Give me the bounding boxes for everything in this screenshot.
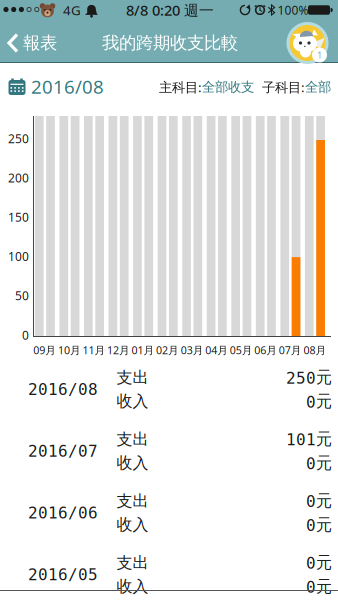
staticText: 50 [15,288,29,304]
staticText: 100 [8,248,29,264]
button[interactable]: 全部 [305,79,331,95]
staticText: 07月 [279,343,302,357]
staticText: 2016/06 [28,504,98,522]
staticText: 子科目: [254,78,305,96]
staticText: 收入 [116,453,148,473]
staticText: 收入 [116,515,148,535]
staticText: 報表 [23,32,57,54]
staticText: 2016/08 [28,380,98,399]
staticText: 100% [277,2,308,18]
staticText: 01月 [131,343,154,357]
staticText: 12月 [107,343,130,357]
staticText: 0元 [306,577,332,596]
staticText: 02月 [156,343,179,357]
staticText: 支出 [116,553,148,572]
staticText: 全部收支 [202,79,254,95]
button[interactable]: 全部收支 [202,79,254,95]
staticText: 09月 [33,343,56,357]
staticText: 0元 [306,453,332,473]
staticText: 支出 [116,429,148,449]
button[interactable]: 選擇月份 [8,71,133,101]
staticText: 收入 [116,577,148,596]
staticText: 03月 [181,343,204,357]
staticText: 主科目: [159,78,202,96]
staticText: 101元 [286,429,332,449]
staticText: 2016/08 [31,74,104,99]
staticText: 05月 [230,343,253,357]
staticText: 08月 [303,343,326,357]
staticText: 0元 [306,491,332,511]
staticText: 8/8 0:20 週一 [126,0,214,20]
staticText: 06月 [254,343,277,357]
staticText: 200 [8,170,29,186]
staticText: 0元 [306,515,332,535]
staticText: 4G [63,1,81,19]
staticText: 10月 [58,343,81,357]
staticText: 全部 [305,79,331,95]
staticText: 2016/07 [28,442,98,460]
staticText: 1 [317,49,322,61]
staticText: 我的跨期收支比較 [102,32,238,54]
staticText: 250 [8,130,29,146]
staticText: 支出 [116,368,148,387]
staticText: 250元 [286,368,332,387]
staticText: 04月 [205,343,228,357]
staticText: 2016/05 [28,565,98,584]
staticText: 0 [22,327,29,343]
staticText: 支出 [116,491,148,511]
staticText: 150 [8,209,29,225]
staticText: 11月 [82,343,105,357]
button[interactable]: 返回報表 [7,28,69,58]
staticText: 收入 [116,392,148,411]
staticText: 0元 [306,392,332,411]
button[interactable]: 帳號 [286,22,328,64]
staticText: 0元 [306,553,332,572]
